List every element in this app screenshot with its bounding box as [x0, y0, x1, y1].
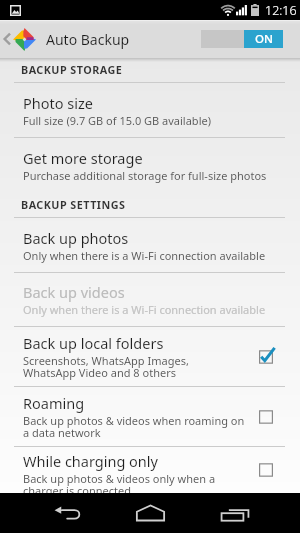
button[interactable]: Roaming: [0, 387, 300, 446]
staticText: ON: [255, 31, 273, 47]
button[interactable]: Home: [120, 493, 180, 533]
staticText: Back up photos & videos when roaming on …: [23, 413, 245, 440]
button[interactable]: Auto Backup on: [201, 30, 283, 48]
button[interactable]: Back up local folders: [0, 327, 300, 386]
button[interactable]: Photo size: [0, 83, 300, 137]
staticText: Get more storage: [23, 148, 143, 168]
button[interactable]: Recent apps: [205, 493, 264, 533]
staticText: BACKUP STORAGE: [21, 62, 123, 77]
staticText: Full size (9.7 GB of 15.0 GB available): [23, 113, 211, 128]
staticText: Back up local folders: [23, 333, 164, 353]
staticText: Purchase additional storage for full-siz…: [23, 168, 267, 183]
staticText: Photo size: [23, 93, 93, 113]
staticText: Screenshots, WhatsApp Images, WhatsApp V…: [23, 353, 189, 380]
button[interactable]: Back: [38, 493, 97, 533]
button[interactable]: Get more storage: [0, 138, 300, 193]
button[interactable]: Navigate up: [0, 20, 38, 58]
button[interactable]: While charging only: [0, 447, 300, 493]
staticText: Roaming: [23, 393, 85, 413]
button[interactable]: Back up photos: [0, 218, 300, 272]
staticText: Auto Backup: [46, 30, 130, 49]
staticText: BACKUP SETTINGS: [21, 197, 126, 212]
staticText: 12:16: [265, 2, 297, 19]
staticText: Back up photos: [23, 228, 129, 248]
staticText: While charging only: [23, 451, 158, 471]
staticText: Only when there is a Wi-Fi connection av…: [23, 248, 266, 263]
staticText: Back up videos: [23, 282, 125, 302]
staticText: Back up photos & videos only when a char…: [23, 471, 216, 493]
button[interactable]: Back up videos: [0, 273, 300, 326]
staticText: Only when there is a Wi-Fi connection av…: [23, 302, 266, 317]
